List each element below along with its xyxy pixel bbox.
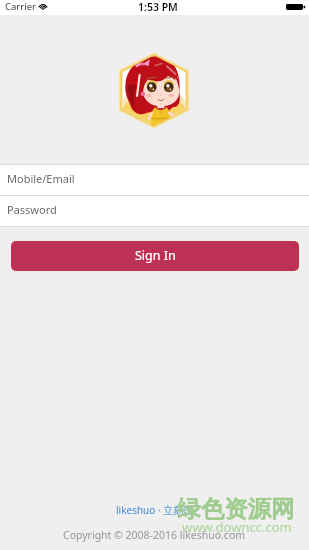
staticText: Password: [7, 202, 57, 217]
staticText: Copyright © 2008-2016 likeshuo.com: [63, 528, 246, 542]
staticText: Mobile/Email: [7, 171, 75, 186]
staticText: Carrier: [5, 0, 36, 13]
button[interactable]: Password: [0, 196, 309, 226]
other: likeshuo logo: [118, 52, 190, 129]
button[interactable]: Sign In: [11, 241, 299, 271]
staticText: likeshuo · 立刻说: [116, 503, 194, 517]
staticText: 绿色资源网: [177, 494, 295, 524]
button[interactable]: Mobile/Email: [0, 165, 309, 195]
staticText: 1:53 PM: [138, 0, 178, 14]
staticText: Sign In: [135, 247, 176, 264]
staticText: www.downcc.com: [182, 518, 292, 536]
